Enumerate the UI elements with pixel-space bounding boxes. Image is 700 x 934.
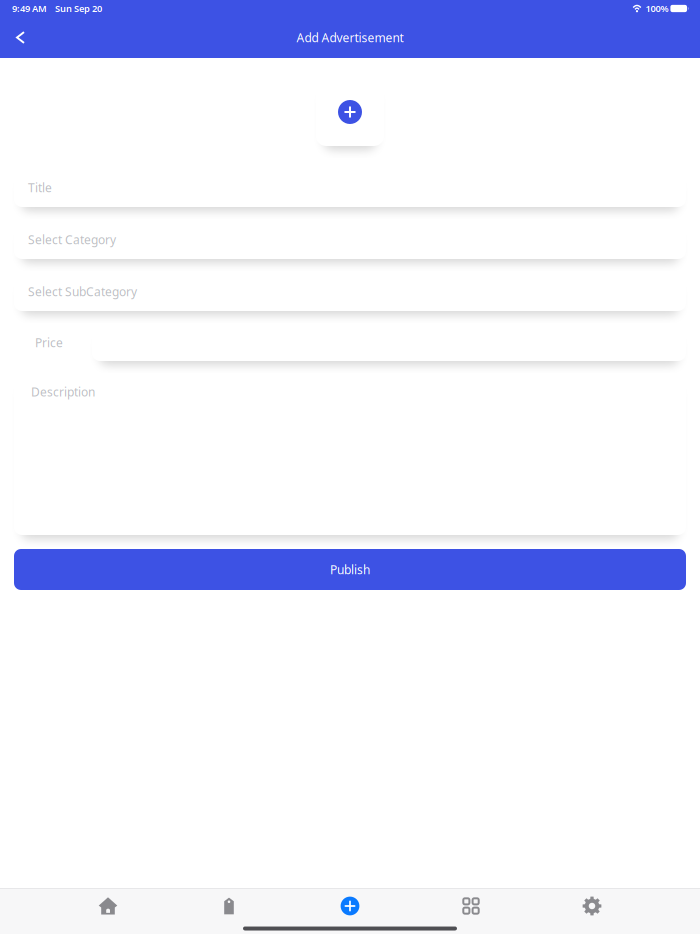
button[interactable]: Add photo	[316, 78, 384, 146]
staticText: Title	[28, 179, 52, 195]
staticText: 100%	[645, 2, 668, 15]
staticText: Select Category	[28, 231, 116, 247]
staticText: Sun Sep 20	[55, 2, 102, 15]
staticText: Select SubCategory	[28, 283, 137, 299]
button[interactable]: Add	[289, 889, 410, 923]
button[interactable]: Categories	[410, 889, 531, 923]
staticText: Description	[31, 384, 95, 400]
button[interactable]: Publish	[14, 549, 686, 590]
staticText: Add Advertisement	[296, 29, 403, 45]
staticText: Publish	[330, 561, 370, 577]
button[interactable]: Listings	[168, 889, 289, 923]
staticText: 9:49 AM	[12, 2, 47, 15]
button[interactable]: Select Category	[14, 220, 686, 259]
staticText: Price	[35, 334, 63, 350]
button[interactable]: Select SubCategory	[14, 272, 686, 311]
button[interactable]: Settings	[531, 889, 652, 923]
button[interactable]: Back	[0, 17, 44, 58]
button[interactable]: Home	[47, 889, 168, 923]
